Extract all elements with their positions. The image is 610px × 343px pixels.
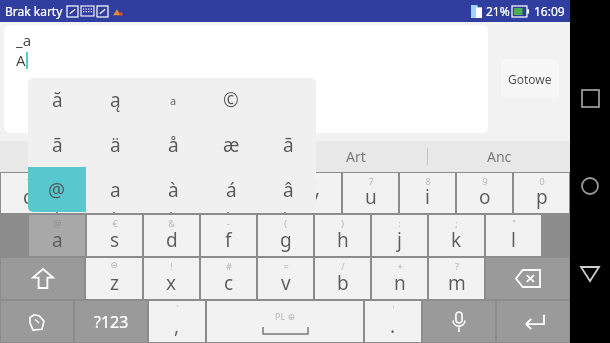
button[interactable]: Anc	[428, 141, 570, 172]
button[interactable]: `	[149, 301, 205, 342]
button[interactable]: @	[29, 215, 85, 256]
staticText: g	[280, 227, 292, 253]
staticText: .	[390, 313, 396, 339]
button[interactable]: ?	[429, 258, 484, 299]
button[interactable]: ⊖	[86, 258, 142, 299]
button[interactable]: €	[87, 215, 142, 256]
staticText: Anc	[487, 147, 512, 166]
button[interactable]: Recent apps	[570, 78, 610, 118]
button[interactable]: á	[202, 167, 260, 212]
button[interactable]: Symbols	[75, 301, 147, 342]
button[interactable]: â	[260, 167, 316, 212]
button[interactable]: +	[372, 258, 427, 299]
staticText: :	[398, 217, 401, 229]
staticText: €	[112, 217, 118, 229]
staticText: )	[341, 217, 344, 229]
staticText: @	[53, 217, 62, 229]
button[interactable]: à	[144, 167, 202, 212]
staticText: 7	[368, 175, 374, 187]
button[interactable]: #	[201, 258, 256, 299]
staticText: q	[23, 184, 35, 210]
button[interactable]: 8	[400, 173, 455, 213]
button[interactable]: ä	[86, 122, 144, 167]
button[interactable]: å	[144, 122, 202, 167]
staticText: n	[394, 270, 406, 296]
staticText: x	[166, 270, 177, 296]
button[interactable]: '	[365, 301, 421, 342]
staticText: a	[110, 177, 121, 203]
button[interactable]: Voice input	[423, 301, 495, 342]
staticText: m	[448, 270, 466, 296]
button[interactable]: Back	[570, 254, 610, 294]
button[interactable]: 6	[286, 173, 341, 213]
staticText: PL ⊕	[275, 310, 296, 322]
button[interactable]: ã	[28, 122, 86, 167]
button[interactable]: Gotowe	[501, 59, 559, 98]
staticText: l	[511, 227, 516, 253]
button[interactable]: Enter	[497, 301, 569, 342]
staticText: ?123	[94, 311, 129, 333]
button[interactable]: Emoji	[1, 301, 73, 342]
staticText: @	[48, 177, 66, 203]
button[interactable]: /	[315, 258, 370, 299]
button[interactable]: 1	[1, 173, 56, 213]
button[interactable]: Delete	[486, 258, 569, 299]
button[interactable]: ā	[260, 122, 316, 167]
button[interactable]: 7	[343, 173, 398, 213]
button[interactable]: a	[144, 78, 202, 122]
button[interactable]: 2	[58, 173, 113, 213]
staticText: (	[284, 217, 287, 229]
staticText: ă	[52, 87, 63, 113]
staticText: y	[309, 184, 319, 210]
button[interactable]: 4	[172, 173, 227, 213]
staticText: /	[341, 260, 345, 272]
button[interactable]: 0	[514, 173, 569, 213]
staticText: z	[110, 270, 119, 296]
staticText: A	[16, 50, 26, 70]
staticText: 0	[539, 175, 545, 187]
staticText: !	[170, 260, 173, 272]
button[interactable]: a	[86, 167, 144, 212]
button[interactable]: !	[144, 258, 199, 299]
button[interactable]: )	[315, 215, 370, 256]
button[interactable]: ă	[28, 78, 86, 122]
button[interactable]: =	[258, 258, 313, 299]
staticText: f	[225, 227, 232, 253]
button[interactable]: :	[372, 215, 427, 256]
staticText: 2	[83, 175, 89, 187]
staticText: æ	[223, 132, 240, 158]
staticText: á	[226, 177, 237, 203]
staticText: Art	[346, 147, 366, 166]
staticText: 8	[425, 175, 431, 187]
button[interactable]: æ	[202, 122, 260, 167]
staticText: v	[281, 270, 291, 296]
button[interactable]: ©	[202, 78, 260, 122]
staticText: ä	[110, 132, 121, 158]
staticText: â	[283, 177, 294, 203]
button[interactable]: Art	[285, 141, 427, 172]
button[interactable]: 5	[229, 173, 284, 213]
button[interactable]: ;	[429, 215, 484, 256]
button[interactable]: -	[201, 215, 256, 256]
staticText: Brak karty	[5, 3, 63, 19]
button[interactable]: Shift	[1, 258, 84, 299]
staticText: ;	[455, 217, 458, 229]
staticText: 21%	[486, 3, 510, 19]
button[interactable]: 9	[457, 173, 512, 213]
button[interactable]: Home	[570, 166, 610, 206]
button[interactable]: _a	[4, 25, 488, 133]
button[interactable]: @	[28, 167, 86, 212]
button[interactable]: PL ⊕	[207, 301, 363, 342]
button[interactable]: &	[144, 215, 199, 256]
button[interactable]: Autor	[142, 141, 284, 172]
button[interactable]: "	[486, 215, 541, 256]
button[interactable]: 3	[115, 173, 170, 213]
staticText: Autor	[195, 147, 232, 166]
button[interactable]: Aż	[0, 141, 141, 172]
button[interactable]: (	[258, 215, 313, 256]
staticText: ⊖	[110, 260, 118, 270]
button[interactable]: ą	[86, 78, 144, 122]
